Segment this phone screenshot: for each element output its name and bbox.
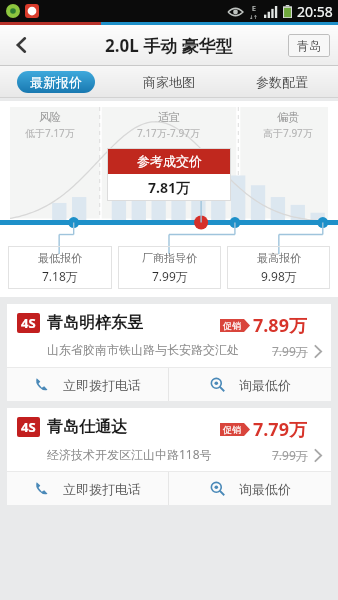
staticText: 最高报价: [257, 251, 301, 265]
staticText: 7.81万: [148, 178, 190, 197]
staticText: 青岛明梓东昱: [47, 313, 143, 333]
button[interactable]: 询最低价: [169, 472, 331, 505]
staticText: 7.18万: [42, 268, 78, 284]
staticText: 9.98万: [261, 268, 297, 284]
staticText: 高于7.97万: [263, 126, 313, 140]
button[interactable]: 商家地图: [112, 66, 225, 97]
button[interactable]: 立即拨打电话: [7, 472, 168, 505]
staticText: 7.79万: [253, 417, 307, 442]
staticText: 商家地图: [143, 74, 195, 90]
staticText: 7.89万: [253, 313, 307, 338]
button[interactable]: 参数配置: [225, 66, 338, 97]
staticText: 风险: [39, 110, 61, 124]
staticText: E: [252, 4, 256, 14]
staticText: 偏贵: [277, 110, 299, 124]
staticText: 询最低价: [239, 377, 291, 393]
button[interactable]: Back: [0, 25, 44, 65]
staticText: 询最低价: [239, 481, 291, 497]
staticText: 青岛: [297, 38, 321, 53]
staticText: 促销: [223, 320, 241, 331]
staticText: 促销: [223, 424, 241, 435]
staticText: 4S: [21, 418, 36, 436]
staticText: 2.0L 手动 豪华型: [105, 34, 233, 57]
staticText: 20:58: [297, 2, 333, 21]
staticText: 适宜: [158, 110, 180, 124]
staticText: 厂商指导价: [142, 251, 197, 265]
staticText: 山东省胶南市铁山路与长安路交汇处: [47, 342, 239, 357]
staticText: 4S: [21, 314, 36, 332]
staticText: 低于7.17万: [25, 126, 75, 140]
staticText: 7.99万: [272, 447, 308, 463]
staticText: ↓↑: [249, 14, 258, 20]
staticText: 立即拨打电话: [63, 481, 141, 497]
staticText: 参考成交价: [137, 153, 202, 169]
button[interactable]: 立即拨打电话: [7, 368, 168, 401]
staticText: 参数配置: [256, 74, 308, 90]
staticText: 青岛仕通达: [47, 417, 127, 437]
button[interactable]: 青岛: [288, 34, 330, 57]
staticText: 7.99万: [272, 343, 308, 359]
button[interactable]: 4S: [7, 408, 331, 471]
staticText: 7.99万: [152, 268, 188, 284]
button[interactable]: 4S: [7, 304, 331, 367]
staticText: 经济技术开发区江山中路118号: [47, 446, 212, 462]
button[interactable]: 询最低价: [169, 368, 331, 401]
staticText: 立即拨打电话: [63, 377, 141, 393]
staticText: 最新报价: [30, 74, 82, 90]
button[interactable]: 最新报价: [17, 71, 95, 93]
staticText: 7.17万-7.97万: [137, 126, 200, 140]
staticText: 最低报价: [38, 251, 82, 265]
